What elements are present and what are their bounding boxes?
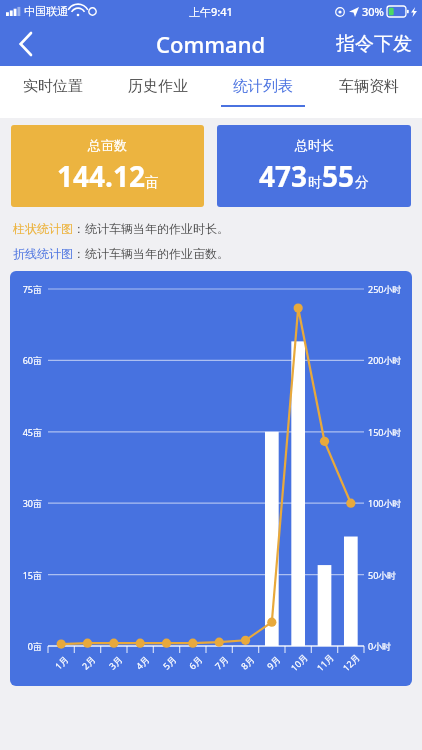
staticText: 2月 bbox=[79, 652, 98, 672]
staticText: 指令下发 bbox=[336, 32, 412, 56]
staticText: 时 bbox=[308, 174, 322, 192]
staticText: 10月 bbox=[288, 651, 310, 673]
staticText: 12月 bbox=[340, 651, 362, 673]
button[interactable]: Back bbox=[6, 24, 46, 64]
button[interactable]: 总时长 bbox=[217, 125, 411, 207]
staticText: 中国联通 bbox=[24, 4, 68, 18]
staticText: 总亩数 bbox=[88, 137, 127, 153]
staticText: 144.12 bbox=[57, 157, 145, 195]
button[interactable]: 0亩 bbox=[10, 271, 412, 686]
staticText: 分 bbox=[355, 174, 369, 192]
button[interactable]: 车辆资料 bbox=[316, 66, 422, 118]
button[interactable]: 指令下发 bbox=[336, 32, 412, 56]
staticText: ：统计车辆当年的作业时长。 bbox=[73, 221, 229, 236]
staticText: 6月 bbox=[186, 652, 205, 672]
staticText: 75亩 bbox=[10, 283, 42, 295]
staticText: 30% bbox=[362, 4, 384, 19]
staticText: ：统计车辆当年的作业亩数。 bbox=[73, 246, 229, 261]
staticText: 0亩 bbox=[10, 640, 42, 652]
staticText: 100小时 bbox=[368, 497, 412, 509]
staticText: 45亩 bbox=[10, 426, 42, 438]
staticText: 0小时 bbox=[368, 640, 412, 652]
staticText: 1月 bbox=[52, 652, 71, 672]
staticText: 总时长 bbox=[295, 137, 334, 153]
button[interactable]: 总亩数 bbox=[11, 125, 204, 207]
staticText: 60亩 bbox=[10, 354, 42, 366]
button[interactable]: 统计列表 bbox=[210, 66, 316, 118]
staticText: 统计列表 bbox=[233, 77, 293, 96]
staticText: 150小时 bbox=[368, 426, 412, 438]
button[interactable]: 历史作业 bbox=[105, 66, 210, 118]
staticText: 柱状统计图 bbox=[13, 221, 73, 236]
staticText: 上午9:41 bbox=[189, 4, 233, 19]
staticText: 250小时 bbox=[368, 283, 412, 295]
staticText: 3月 bbox=[106, 652, 125, 672]
staticText: 9月 bbox=[264, 652, 283, 672]
staticText: 30亩 bbox=[10, 497, 42, 509]
staticText: 200小时 bbox=[368, 354, 412, 366]
staticText: 5月 bbox=[160, 652, 179, 672]
staticText: Command bbox=[156, 29, 266, 59]
staticText: 8月 bbox=[238, 652, 257, 672]
staticText: 亩 bbox=[145, 174, 159, 192]
staticText: 历史作业 bbox=[128, 77, 188, 96]
staticText: 实时位置 bbox=[23, 77, 83, 96]
staticText: 473 bbox=[259, 157, 308, 195]
button[interactable]: 实时位置 bbox=[0, 66, 105, 118]
staticText: 11月 bbox=[314, 651, 336, 673]
staticText: 车辆资料 bbox=[339, 77, 399, 96]
staticText: 15亩 bbox=[10, 569, 42, 581]
staticText: 55 bbox=[322, 157, 355, 195]
staticText: 折线统计图 bbox=[13, 246, 73, 261]
staticText: 7月 bbox=[212, 652, 231, 672]
staticText: 4月 bbox=[133, 652, 152, 672]
staticText: 50小时 bbox=[368, 569, 412, 581]
